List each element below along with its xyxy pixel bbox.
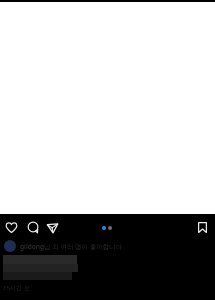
button[interactable]: Like [6,222,17,233]
button[interactable] [3,255,78,280]
button[interactable]: Comment [28,222,39,233]
button[interactable]: Save [198,222,207,233]
staticText: 15시간 전 [3,284,30,292]
staticText: gildong님 외 여러 명이 좋아합니다 [20,242,123,251]
button[interactable]: Share [47,222,58,233]
button[interactable]: gildong님 외 여러 명이 좋아합니다 [4,239,123,253]
